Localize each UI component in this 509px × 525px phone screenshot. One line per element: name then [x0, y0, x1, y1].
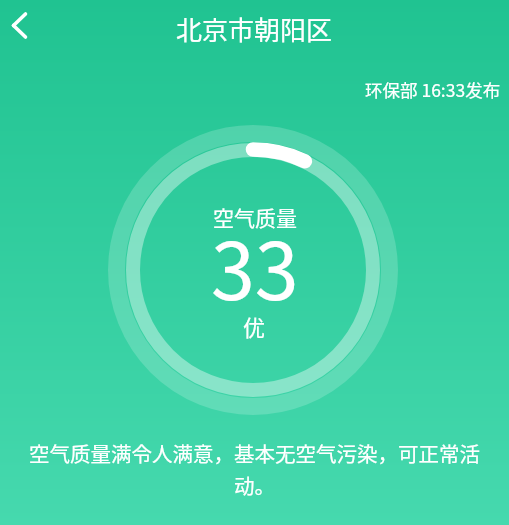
staticText: 优 [243, 310, 266, 342]
staticText: 环保部 16:33发布 [365, 77, 501, 102]
staticText: 33 [211, 208, 299, 322]
staticText: 空气质量满令人满意，基本无空气污染，可正常活动。 [28, 438, 481, 500]
staticText: 北京市朝阳区 [176, 10, 333, 48]
staticText: 空气质量 [213, 202, 297, 232]
